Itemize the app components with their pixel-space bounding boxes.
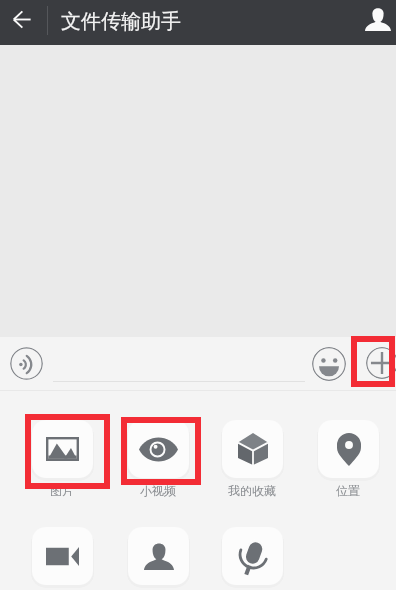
- button[interactable]: Voice message: [10, 347, 43, 380]
- button[interactable]: Back: [0, 0, 44, 43]
- button[interactable]: Attachment: [32, 527, 93, 585]
- button[interactable]: [32, 420, 93, 478]
- staticText: 小视频: [140, 483, 176, 498]
- button[interactable]: [128, 420, 189, 478]
- button[interactable]: More options: [366, 347, 396, 379]
- button[interactable]: [318, 420, 379, 478]
- button[interactable]: Emoji: [312, 347, 346, 381]
- staticText: 我的收藏: [228, 483, 276, 498]
- button[interactable]: Attachment: [222, 527, 283, 585]
- button[interactable]: [53, 350, 305, 382]
- button[interactable]: Attachment: [128, 527, 189, 585]
- button[interactable]: Contact profile: [359, 0, 396, 43]
- staticText: 位置: [336, 483, 360, 498]
- staticText: 文件传输助手: [61, 9, 181, 34]
- staticText: 图片: [50, 483, 74, 498]
- button[interactable]: [222, 420, 283, 478]
